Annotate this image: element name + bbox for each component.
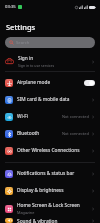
staticText: SIM card & mobile data: [17, 96, 70, 103]
staticText: Magazine: [17, 210, 35, 215]
button[interactable]: Bluetooth: [0, 125, 100, 142]
staticText: Wi-Fi: [17, 113, 28, 120]
staticText: Not connected: [62, 131, 89, 136]
button[interactable]: Home Screen & Lock Screen: [0, 199, 100, 218]
staticText: Display & brightness: [17, 187, 64, 194]
staticText: Airplane mode: [17, 79, 51, 86]
button[interactable]: Display & brightness: [0, 182, 100, 199]
button[interactable]: Other Wireless Connections: [0, 142, 100, 159]
staticText: Settings: [6, 22, 36, 32]
staticText: Notifications & status bar: [17, 170, 75, 177]
staticText: Search: [16, 40, 30, 46]
button[interactable]: Wi-Fi: [0, 108, 100, 125]
staticText: Bluetooth: [17, 130, 40, 137]
staticText: Not connected: [62, 114, 89, 119]
staticText: Sound & vibration: [17, 218, 58, 223]
button[interactable]: SIM card & mobile data: [0, 91, 100, 108]
button[interactable]: Airplane mode: [84, 80, 95, 86]
button[interactable]: Sign in: [0, 52, 100, 71]
button[interactable]: Search: [5, 37, 95, 48]
staticText: Sign in to use services: [18, 63, 55, 68]
staticText: Sign in: [18, 55, 34, 62]
staticText: Other Wireless Connections: [17, 147, 80, 154]
staticText: 03:35: [5, 4, 16, 10]
staticText: Home Screen & Lock Screen: [17, 202, 80, 209]
button[interactable]: Notifications & status bar: [0, 165, 100, 182]
button[interactable]: Sound & vibration: [0, 218, 100, 223]
button[interactable]: Airplane mode: [0, 74, 100, 91]
